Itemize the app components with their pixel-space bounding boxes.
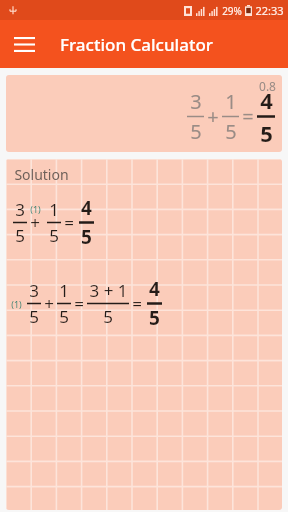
staticText: 4 — [149, 276, 160, 302]
staticText: 29% — [222, 4, 242, 18]
staticText: 5 — [190, 118, 202, 145]
staticText: 3 — [15, 198, 25, 221]
staticText: = — [74, 292, 84, 315]
staticText: 5 — [149, 305, 160, 331]
staticText: = — [242, 103, 254, 130]
staticText: = — [64, 211, 74, 234]
staticText: 4 — [81, 195, 92, 221]
staticText: 3 — [29, 279, 39, 302]
staticText: + — [44, 292, 54, 315]
button[interactable]: 0.8 — [6, 75, 282, 152]
staticText: (1) — [30, 203, 41, 215]
staticText: 5 — [81, 224, 92, 250]
staticText: 3 — [190, 88, 202, 115]
staticText: 1 — [225, 88, 237, 115]
staticText: 5 — [225, 118, 237, 145]
button[interactable]: Solution — [6, 159, 282, 510]
staticText: 1 — [49, 198, 59, 221]
staticText: + — [207, 103, 219, 130]
staticText: 4 — [260, 85, 273, 115]
staticText: 5 — [59, 305, 69, 328]
staticText: 0.8 — [259, 78, 276, 94]
staticText: + — [30, 211, 40, 234]
staticText: (1) — [11, 298, 22, 310]
staticText: 5 — [260, 118, 273, 148]
staticText: 5 — [29, 305, 39, 328]
staticText: 5 — [15, 224, 25, 247]
staticText: Solution — [14, 165, 69, 184]
staticText: 1 — [59, 279, 69, 302]
staticText: 3 + 1 — [89, 279, 128, 302]
staticText: 22:33 — [255, 3, 284, 18]
staticText: = — [132, 292, 142, 315]
button[interactable]: Open navigation menu — [0, 20, 48, 68]
staticText: Fraction Calculator — [60, 33, 213, 56]
staticText: 5 — [49, 224, 59, 247]
staticText: 5 — [103, 305, 113, 328]
